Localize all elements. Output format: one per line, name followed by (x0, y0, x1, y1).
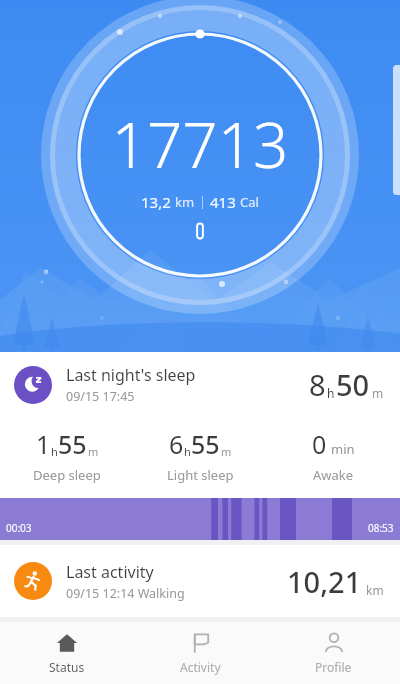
staticText: 6 (169, 427, 184, 461)
staticText: Cal (240, 193, 259, 211)
button[interactable]: Status (0, 622, 134, 684)
staticText: 8 (309, 365, 326, 404)
staticText: Deep sleep (33, 466, 101, 484)
staticText: 413 (210, 192, 236, 212)
staticText: h (51, 444, 58, 459)
button[interactable]: Last night's sleep (0, 352, 400, 540)
staticText: 55 (58, 427, 87, 461)
staticText: Activity (180, 659, 221, 675)
staticText: Profile (315, 659, 352, 675)
staticText: Last night's sleep (66, 364, 196, 386)
staticText: km (366, 582, 384, 598)
staticText: Awake (313, 466, 354, 484)
staticText: Last activity (66, 561, 154, 583)
staticText: m (88, 444, 99, 459)
button[interactable]: Activity (134, 622, 267, 684)
button[interactable]: Profile (267, 622, 400, 684)
staticText: Light sleep (167, 466, 234, 484)
button[interactable]: Last activity (0, 545, 400, 617)
staticText: 10,21 (287, 562, 362, 601)
staticText: 09/15 12:14 Walking (66, 585, 185, 602)
staticText: 08:53 (368, 521, 394, 535)
staticText: 13,2 (141, 192, 171, 212)
staticText: min (331, 440, 355, 458)
staticText: Status (49, 659, 85, 675)
staticText: 50 (336, 365, 370, 404)
staticText: m (221, 444, 232, 459)
staticText: m (372, 385, 384, 401)
staticText: km (175, 193, 195, 211)
staticText: 1 (36, 427, 51, 461)
staticText: 55 (191, 427, 220, 461)
staticText: h (327, 385, 335, 401)
staticText: 0 (312, 427, 327, 461)
staticText: 17713 (111, 102, 289, 186)
staticText: 00:03 (6, 521, 32, 535)
staticText: h (184, 444, 191, 459)
staticText: 09/15 17:45 (66, 388, 135, 405)
